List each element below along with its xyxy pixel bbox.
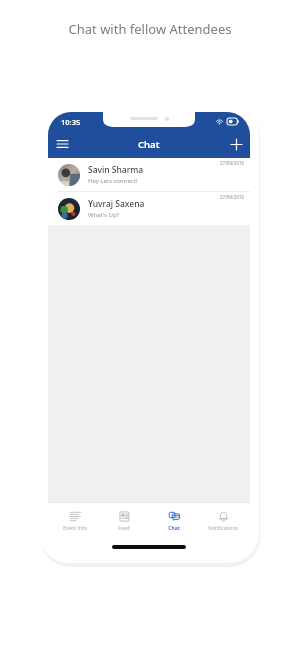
staticText: Hey Lets connect! [88,177,138,185]
button[interactable]: New chat [222,130,250,158]
staticText: Chat [138,138,160,151]
staticText: 27/09/2019 [220,160,244,166]
button[interactable]: Savin Sharma [48,158,250,191]
button[interactable]: Notifications [200,503,246,539]
button[interactable]: Event Info [52,503,98,539]
staticText: Savin Sharma [88,164,144,176]
button[interactable]: Chat [151,503,197,539]
staticText: Notifications [208,525,238,532]
staticText: 10:35 [61,117,81,127]
staticText: Chat [168,525,180,532]
button[interactable]: Menu [48,130,76,158]
staticText: Event Info [63,525,87,532]
staticText: 27/09/2019 [220,194,244,200]
staticText: Chat with fellow Attendees [0,20,300,38]
staticText: Yuvraj Saxena [88,198,145,210]
button[interactable]: Yuvraj Saxena [48,192,250,225]
button[interactable]: Feed [101,503,147,539]
staticText: What's Up? [88,211,120,219]
staticText: Feed [118,525,130,532]
